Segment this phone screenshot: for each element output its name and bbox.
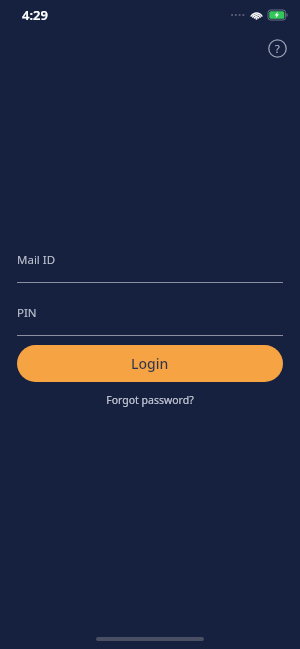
staticText: Forgot password? <box>106 393 194 407</box>
staticText: ? <box>275 41 280 56</box>
staticText: 4:29 <box>22 6 48 24</box>
button[interactable]: PIN <box>0 305 300 336</box>
button[interactable]: Forgot password? <box>96 390 204 410</box>
staticText: Mail ID <box>17 252 56 268</box>
button[interactable]: Mail ID <box>0 252 300 283</box>
button[interactable]: Help <box>264 35 290 61</box>
staticText: PIN <box>17 305 37 321</box>
button[interactable]: Login <box>17 345 283 382</box>
staticText: Login <box>131 354 169 373</box>
